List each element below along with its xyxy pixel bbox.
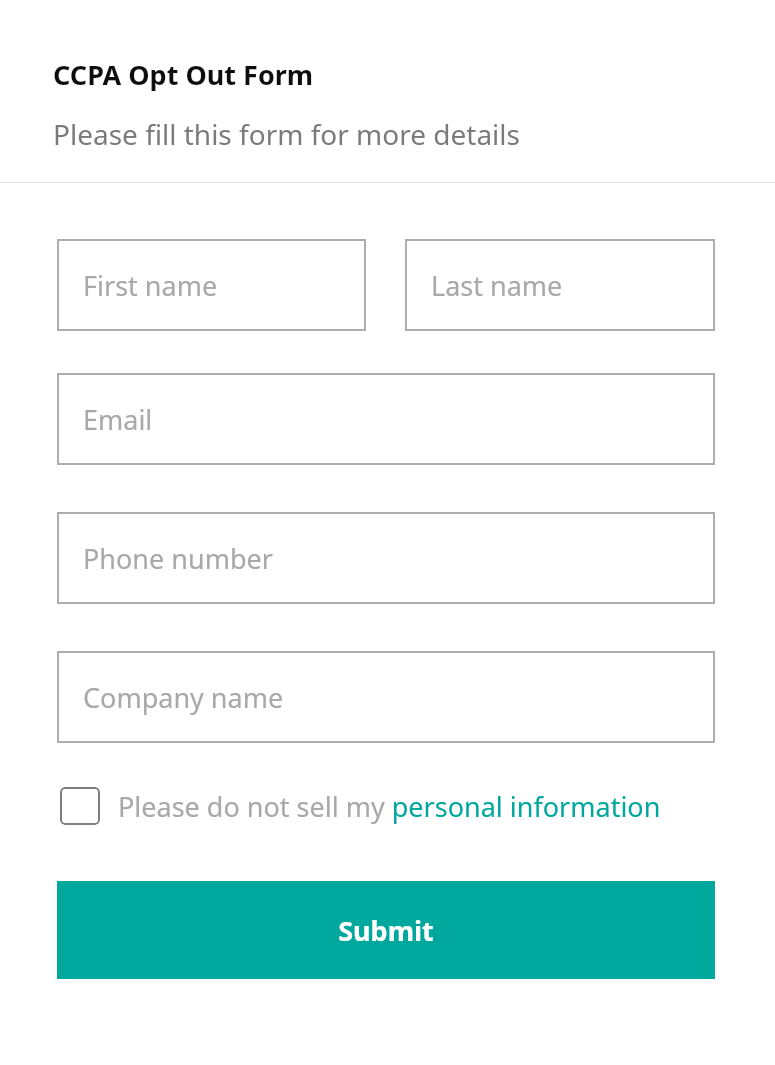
button[interactable]: Last name <box>405 239 715 331</box>
button[interactable]: Phone number <box>57 512 715 604</box>
button[interactable]: Company name <box>57 651 715 743</box>
staticText: Phone number <box>83 540 273 577</box>
button[interactable]: Submit <box>57 881 715 979</box>
staticText: Please do not sell my personal informati… <box>118 788 661 825</box>
staticText: Last name <box>431 267 563 304</box>
staticText: Company name <box>83 679 284 716</box>
button[interactable]: Email <box>57 373 715 465</box>
staticText: Email <box>83 401 153 438</box>
staticText: Submit <box>338 912 434 949</box>
staticText: First name <box>83 267 218 304</box>
other: Do not sell my personal information chec… <box>60 787 100 825</box>
staticText: CCPA Opt Out Form <box>53 56 314 93</box>
button[interactable]: Do not sell my personal information chec… <box>60 787 661 825</box>
button[interactable]: First name <box>57 239 366 331</box>
staticText: Please fill this form for more details <box>53 115 520 153</box>
